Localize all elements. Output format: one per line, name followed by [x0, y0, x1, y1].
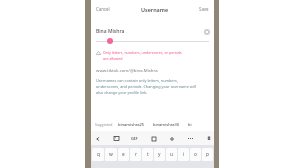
button[interactable]: o	[190, 148, 201, 161]
staticText: r	[135, 151, 137, 158]
button[interactable]: More	[187, 135, 194, 142]
button[interactable]: Clear	[204, 29, 210, 35]
button[interactable]: binamishra30	[153, 122, 180, 127]
button[interactable]: p	[202, 148, 213, 161]
button[interactable]: binamishra25	[118, 122, 145, 127]
button[interactable]: Save	[199, 6, 209, 12]
button[interactable]: w	[105, 148, 117, 161]
staticText: e	[122, 151, 125, 158]
button[interactable]: Voice	[205, 135, 212, 142]
staticText: underscores, and periods. Changing your …	[96, 84, 196, 89]
button[interactable]: Back	[94, 135, 101, 142]
button[interactable]: e	[118, 148, 129, 161]
staticText: w	[109, 151, 113, 158]
button[interactable]: Settings	[168, 135, 175, 142]
staticText: Username	[141, 6, 169, 13]
staticText: y	[158, 151, 161, 158]
button[interactable]: r	[130, 148, 141, 161]
staticText: u	[170, 151, 173, 158]
staticText: Bina Mishra	[96, 28, 204, 35]
staticText: are allowed	[103, 56, 123, 61]
button[interactable]: Cancel	[96, 6, 110, 12]
staticText: Only letters, numbers, underscores, or p…	[103, 50, 182, 55]
staticText: o	[194, 151, 197, 158]
staticText: q	[97, 151, 100, 158]
button[interactable]: i	[178, 148, 189, 161]
button[interactable]: Photos	[113, 135, 120, 142]
staticText: also change your profile link.	[96, 90, 148, 95]
staticText: t	[147, 151, 149, 158]
staticText: bi	[188, 122, 192, 127]
button[interactable]: GIF	[131, 136, 138, 141]
button[interactable]: q	[92, 148, 104, 161]
staticText: i	[183, 151, 185, 158]
staticText: p	[206, 151, 209, 158]
button[interactable]: Stickers	[150, 135, 157, 142]
staticText: Save	[199, 6, 209, 12]
staticText: Cancel	[96, 6, 110, 12]
button[interactable]: y	[154, 148, 165, 161]
staticText: Usernames can contain only letters, numb…	[96, 78, 178, 83]
button[interactable]: u	[166, 148, 177, 161]
staticText: Suggested	[95, 122, 113, 127]
button[interactable]: t	[142, 148, 153, 161]
staticText: www.tiktok.com/@bina.Mishra	[96, 67, 158, 73]
